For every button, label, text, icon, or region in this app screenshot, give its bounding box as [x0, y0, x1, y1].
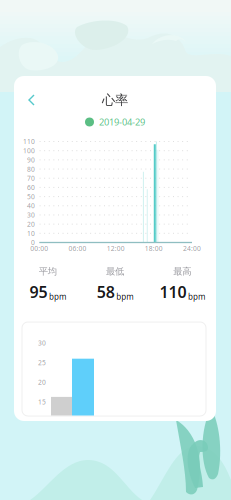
staticText: 80	[27, 165, 35, 173]
staticText: bpm	[116, 291, 133, 302]
staticText: 30	[38, 339, 46, 347]
staticText: 12:00	[107, 244, 125, 253]
staticText: bpm	[188, 291, 205, 302]
staticText: bpm	[49, 291, 66, 302]
staticText: 110	[23, 137, 35, 146]
staticText: 25	[38, 358, 46, 367]
staticText: 20	[38, 378, 46, 387]
staticText: 0	[31, 238, 35, 247]
staticText: 平均	[39, 266, 57, 277]
staticText: 18:00	[145, 244, 163, 253]
staticText: 00:00	[30, 244, 48, 253]
staticText: 90	[27, 155, 35, 164]
staticText: 100	[23, 146, 35, 155]
staticText: 2019-04-29	[99, 116, 145, 128]
staticText: 95	[29, 281, 47, 302]
staticText: 最低	[106, 266, 124, 277]
staticText: 最高	[173, 266, 191, 277]
staticText: 58	[97, 281, 115, 302]
staticText: 10	[27, 229, 35, 238]
staticText: 50	[27, 192, 35, 201]
staticText: 心率	[102, 92, 128, 108]
staticText: 24:00	[183, 244, 201, 253]
button[interactable]: Back	[20, 90, 44, 110]
staticText: 40	[27, 201, 35, 210]
staticText: 20	[27, 220, 35, 229]
staticText: 30	[27, 210, 35, 219]
staticText: 110	[160, 281, 187, 302]
staticText: 15	[38, 397, 46, 406]
staticText: 06:00	[68, 244, 86, 253]
staticText: 60	[27, 183, 35, 192]
staticText: 70	[27, 174, 35, 183]
